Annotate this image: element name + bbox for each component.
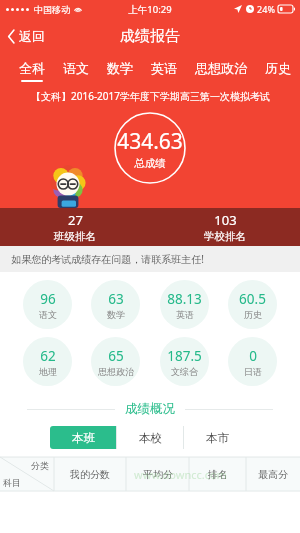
staticText: 434.63 — [117, 127, 183, 156]
button[interactable]: 103 — [150, 208, 300, 246]
staticText: 日语 — [244, 366, 262, 377]
staticText: 平均分 — [143, 468, 173, 481]
button[interactable]: 62 — [23, 337, 72, 386]
staticText: 语文 — [63, 60, 89, 76]
staticText: 英语 — [176, 309, 194, 320]
staticText: 成绩概况 — [125, 401, 175, 417]
staticText: 排名 — [208, 468, 228, 481]
button[interactable]: 0 — [228, 337, 277, 386]
button[interactable]: 60.5 — [228, 280, 277, 329]
staticText: 返回 — [19, 28, 45, 44]
staticText: 60.5 — [239, 290, 266, 308]
button[interactable]: 返回 — [0, 22, 55, 50]
staticText: www.downcc.com — [134, 467, 227, 482]
staticText: 历史 — [244, 309, 262, 320]
staticText: 63 — [108, 290, 124, 308]
button[interactable]: 27 — [0, 208, 150, 246]
button[interactable]: 全科 — [10, 54, 54, 84]
staticText: 数学 — [107, 60, 133, 76]
staticText: 本市 — [206, 431, 229, 445]
staticText: 英语 — [151, 60, 177, 76]
button[interactable]: 63 — [91, 280, 140, 329]
button[interactable]: 本校 — [117, 426, 183, 449]
staticText: 数学 — [107, 309, 125, 320]
staticText: 思想政治 — [195, 60, 247, 76]
button[interactable]: 65 — [91, 337, 140, 386]
staticText: 27 — [68, 211, 83, 229]
staticText: 0 — [249, 347, 257, 365]
button[interactable]: 本班 — [50, 426, 116, 449]
staticText: 全科 — [19, 60, 45, 76]
staticText: 地理 — [39, 366, 57, 377]
button[interactable]: 语文 — [54, 54, 98, 84]
staticText: 62 — [40, 347, 56, 365]
staticText: 科目 — [3, 477, 21, 488]
button[interactable]: 本市 — [184, 426, 250, 449]
staticText: 思想政治 — [98, 366, 134, 377]
button[interactable]: 88.13 — [160, 280, 209, 329]
button[interactable]: 96 — [23, 280, 72, 329]
staticText: 24% — [257, 3, 275, 15]
button[interactable]: 英语 — [142, 54, 186, 84]
staticText: 187.5 — [167, 347, 202, 365]
staticText: 分类 — [31, 460, 49, 471]
staticText: 88.13 — [167, 290, 202, 308]
staticText: 我的分数 — [70, 468, 110, 481]
button[interactable]: 数学 — [98, 54, 142, 84]
staticText: 上午10:29 — [128, 3, 172, 16]
staticText: 最高分 — [258, 468, 288, 481]
staticText: 本班 — [72, 431, 95, 445]
button[interactable]: 思想政治 — [186, 54, 256, 84]
staticText: 学校排名 — [204, 230, 246, 243]
staticText: 文综合 — [171, 366, 198, 377]
staticText: 本校 — [139, 431, 162, 445]
staticText: 【文科】2016-2017学年度下学期高三第一次模拟考试 — [31, 89, 270, 103]
staticText: 成绩报告 — [120, 27, 180, 46]
button[interactable]: 历史 — [256, 54, 300, 84]
button[interactable]: 187.5 — [160, 337, 209, 386]
staticText: 中国移动 — [34, 4, 70, 15]
staticText: 如果您的考试成绩存在问题，请联系班主任! — [11, 252, 204, 266]
staticText: 班级排名 — [54, 230, 96, 243]
staticText: 历史 — [265, 60, 291, 76]
staticText: 总成绩 — [134, 157, 166, 170]
staticText: 65 — [108, 347, 124, 365]
staticText: 96 — [40, 290, 56, 308]
staticText: 103 — [214, 211, 237, 229]
staticText: 语文 — [39, 309, 57, 320]
